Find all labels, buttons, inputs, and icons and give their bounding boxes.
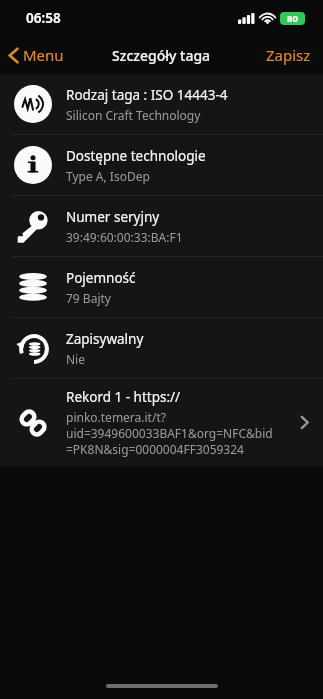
staticText: Silicon Craft Technology bbox=[66, 107, 201, 123]
button[interactable]: Numer seryjny bbox=[0, 196, 323, 256]
other: Pojemność bbox=[12, 266, 54, 308]
staticText: Dostępne technologie bbox=[66, 147, 206, 165]
other: Rekord 1 bbox=[12, 402, 54, 444]
staticText: Zapisz bbox=[266, 45, 311, 65]
staticText: Rekord 1 - https:// bbox=[66, 388, 181, 406]
staticText: 79 Bajty bbox=[66, 290, 111, 306]
other: Rodzaj taga bbox=[12, 83, 54, 125]
staticText: Numer seryjny bbox=[66, 208, 160, 226]
button[interactable]: Pojemność bbox=[0, 257, 323, 317]
other: Numer seryjny bbox=[12, 205, 54, 247]
other: Zapisywalny bbox=[12, 327, 54, 369]
staticText: =PK8N&sig=0000004FF3059324 bbox=[66, 441, 244, 457]
staticText: Menu bbox=[23, 45, 64, 65]
button[interactable]: Dostępne technologie bbox=[0, 135, 323, 195]
button[interactable]: Zapisz bbox=[254, 41, 323, 69]
staticText: 80 bbox=[287, 12, 298, 25]
staticText: Nie bbox=[66, 351, 85, 367]
staticText: Type A, IsoDep bbox=[66, 168, 150, 184]
staticText: 06:58 bbox=[26, 9, 61, 27]
button[interactable]: Zapisywalny bbox=[0, 318, 323, 378]
staticText: pinko.temera.it/t? bbox=[66, 409, 166, 425]
staticText: Zapisywalny bbox=[66, 330, 144, 348]
button[interactable]: Rekord 1 bbox=[0, 379, 323, 466]
button[interactable]: Menu bbox=[0, 41, 72, 69]
button[interactable]: Rodzaj taga bbox=[0, 74, 323, 134]
other: Dostępne technologie bbox=[12, 144, 54, 186]
staticText: Rodzaj taga : ISO 14443-4 bbox=[66, 86, 228, 104]
staticText: uid=3949600033BAF1&org=NFC&bid bbox=[66, 425, 273, 441]
staticText: Szczegóły taga bbox=[112, 46, 211, 65]
staticText: Pojemność bbox=[66, 269, 136, 287]
staticText: 39:49:60:00:33:BA:F1 bbox=[66, 229, 183, 245]
